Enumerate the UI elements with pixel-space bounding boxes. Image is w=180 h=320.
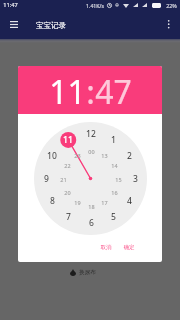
staticText: 00 — [88, 148, 95, 155]
button[interactable]: 确定 — [120, 241, 138, 254]
staticText: 16 — [111, 189, 118, 196]
staticText: 23 — [74, 152, 81, 159]
staticText: 1 — [111, 134, 116, 146]
staticText: 17 — [101, 199, 108, 206]
button[interactable]: 取消 — [97, 241, 115, 254]
staticText: 确定 — [123, 244, 135, 251]
staticText: 14 — [111, 162, 118, 169]
staticText: 13 — [101, 152, 108, 159]
button[interactable]: 47 — [95, 70, 132, 114]
staticText: 5 — [111, 211, 116, 223]
staticText: 4 — [127, 195, 132, 207]
staticText: 8 — [50, 195, 55, 207]
button[interactable]: Open navigation drawer — [3, 13, 24, 35]
button[interactable]: 换尿布 — [70, 269, 96, 276]
staticText: 11 — [63, 134, 73, 146]
button[interactable]: 11 — [49, 70, 86, 114]
staticText: 15 — [115, 176, 122, 183]
staticText: 1.41K/s — [86, 2, 104, 9]
staticText: 宝宝记录 — [36, 21, 66, 30]
staticText: 11:47 — [3, 1, 18, 9]
staticText: 22% — [166, 2, 177, 9]
staticText: : — [86, 70, 95, 114]
staticText: 21 — [60, 176, 67, 183]
staticText: 12 — [86, 128, 96, 140]
staticText: 3 — [133, 173, 138, 185]
staticText: 11 — [49, 70, 86, 114]
staticText: 19 — [74, 199, 81, 206]
staticText: 2 — [127, 150, 132, 162]
staticText: 20 — [64, 189, 71, 196]
button[interactable]: Select hour — [34, 122, 147, 235]
staticText: 18 — [88, 203, 95, 210]
staticText: 取消 — [100, 244, 112, 251]
staticText: 6 — [89, 217, 94, 229]
staticText: 47 — [95, 70, 132, 114]
staticText: 9 — [44, 173, 49, 185]
staticText: 10 — [47, 150, 57, 162]
staticText: 7 — [66, 211, 71, 223]
staticText: 换尿布 — [79, 269, 96, 276]
button[interactable]: More options — [158, 13, 179, 35]
staticText: 22 — [64, 162, 71, 169]
